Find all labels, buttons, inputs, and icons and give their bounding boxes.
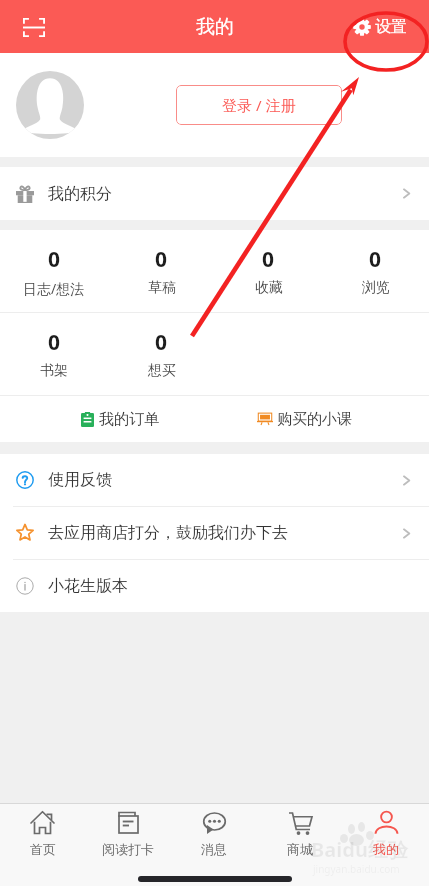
button[interactable]: 购买的小课 [237,396,371,442]
staticText: 商城 [287,841,313,857]
button[interactable]: 小花生版本 [0,560,429,612]
staticText: 去应用商店打分，鼓励我们办下去 [48,523,288,543]
button[interactable]: 商城 [257,804,343,863]
staticText: 0 [155,328,168,357]
staticText: 使用反馈 [48,470,112,490]
button[interactable]: 0 [108,313,215,395]
staticText: 收藏 [255,279,283,297]
button[interactable]: 设置 [349,11,411,43]
staticText: 我的 [196,15,234,39]
staticText: 我的订单 [99,410,159,429]
button[interactable]: 去应用商店打分，鼓励我们办下去 [0,507,429,559]
staticText: 登录 / 注册 [222,95,296,115]
staticText: 0 [262,245,275,274]
staticText: 0 [48,245,61,274]
button[interactable]: 0 [0,230,108,312]
staticText: 浏览 [362,279,390,297]
staticText: 我的 [373,841,399,857]
staticText: 草稿 [148,279,176,297]
button[interactable]: 登录 / 注册 [176,85,342,125]
button[interactable]: 0 [215,230,322,312]
staticText: 想买 [148,362,176,380]
button[interactable]: Avatar [16,71,84,139]
staticText: 购买的小课 [277,410,352,429]
button[interactable]: 首页 [0,804,85,863]
staticText: 阅读打卡 [102,841,154,857]
staticText: 消息 [201,841,227,857]
button[interactable]: 0 [322,230,429,312]
staticText: 小花生版本 [48,576,128,596]
staticText: 0 [369,245,382,274]
button[interactable]: 消息 [171,804,257,863]
button[interactable]: Scan [14,7,54,47]
staticText: 0 [48,328,61,357]
button[interactable]: 我的订单 [59,396,181,442]
button[interactable]: 我的积分 [0,167,429,220]
staticText: 书架 [40,362,68,380]
staticText: 0 [155,245,168,274]
button[interactable]: 0 [0,313,108,395]
button[interactable]: 使用反馈 [0,454,429,506]
staticText: 日志/想法 [23,279,85,298]
button[interactable]: 0 [108,230,215,312]
staticText: 设置 [375,17,407,37]
staticText: 我的积分 [48,184,112,204]
button[interactable]: 我的 [343,804,429,863]
staticText: 首页 [30,841,56,857]
staticText: Baidu经验 [311,836,408,863]
button[interactable]: 阅读打卡 [85,804,171,863]
